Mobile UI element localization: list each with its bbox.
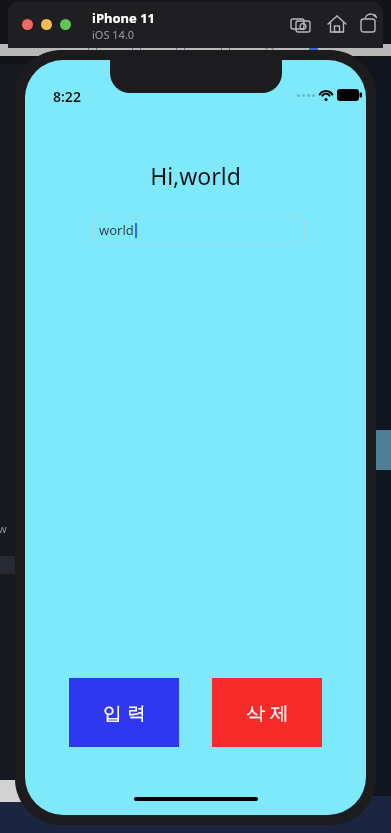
staticText: w — [0, 521, 7, 536]
button[interactable]: world — [92, 215, 305, 244]
button[interactable] — [41, 19, 52, 30]
button[interactable]: Rotate — [358, 13, 382, 37]
staticText: iPhone 11 — [92, 9, 155, 27]
button[interactable]: 입 력 — [69, 678, 179, 747]
staticText: 입 력 — [103, 700, 146, 726]
staticText: Hi,world — [150, 160, 241, 191]
button[interactable] — [22, 19, 33, 30]
button[interactable]: Screenshot — [290, 13, 314, 37]
button[interactable]: 삭 제 — [212, 678, 322, 747]
button[interactable] — [60, 19, 71, 30]
staticText: 8:22 — [53, 87, 81, 106]
staticText: 삭 제 — [246, 700, 289, 726]
staticText: iOS 14.0 — [92, 27, 135, 42]
staticText: world — [99, 221, 134, 239]
button[interactable]: Home — [326, 13, 350, 37]
